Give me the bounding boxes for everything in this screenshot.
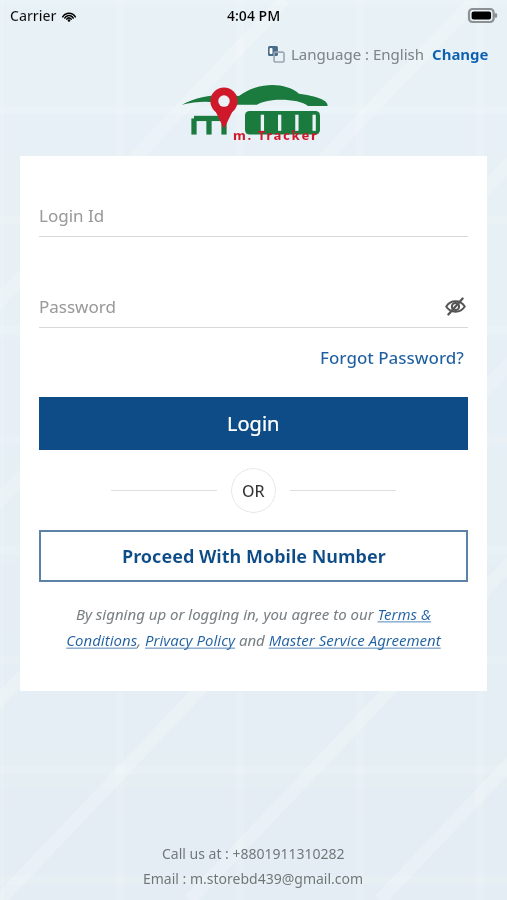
staticText: Forgot Password? bbox=[320, 346, 464, 369]
button[interactable]: Show password bbox=[442, 293, 468, 319]
button[interactable]: By signing up or logging in, you agree t… bbox=[39, 604, 468, 651]
staticText: Login Id bbox=[39, 204, 105, 227]
staticText: Language : English bbox=[291, 44, 424, 64]
staticText: m. Tracker bbox=[233, 126, 319, 144]
staticText: Password bbox=[39, 295, 116, 318]
staticText: Email : m.storebd439@gmail.com bbox=[143, 869, 364, 888]
staticText: 4:04 PM bbox=[227, 6, 281, 25]
staticText: By signing up or logging in, you agree t… bbox=[39, 604, 468, 651]
button[interactable]: Forgot Password? bbox=[316, 342, 468, 373]
other: Language bbox=[268, 46, 284, 62]
button[interactable]: Login bbox=[39, 397, 468, 450]
button[interactable]: Proceed With Mobile Number bbox=[39, 530, 468, 582]
staticText: Carrier bbox=[10, 6, 57, 25]
staticText: OR bbox=[242, 480, 265, 502]
staticText: Call us at : +8801911310282 bbox=[162, 844, 345, 863]
staticText: Change bbox=[432, 44, 489, 64]
staticText: Proceed With Mobile Number bbox=[122, 544, 386, 569]
button[interactable]: Change bbox=[432, 44, 489, 64]
staticText: Login bbox=[227, 410, 280, 437]
